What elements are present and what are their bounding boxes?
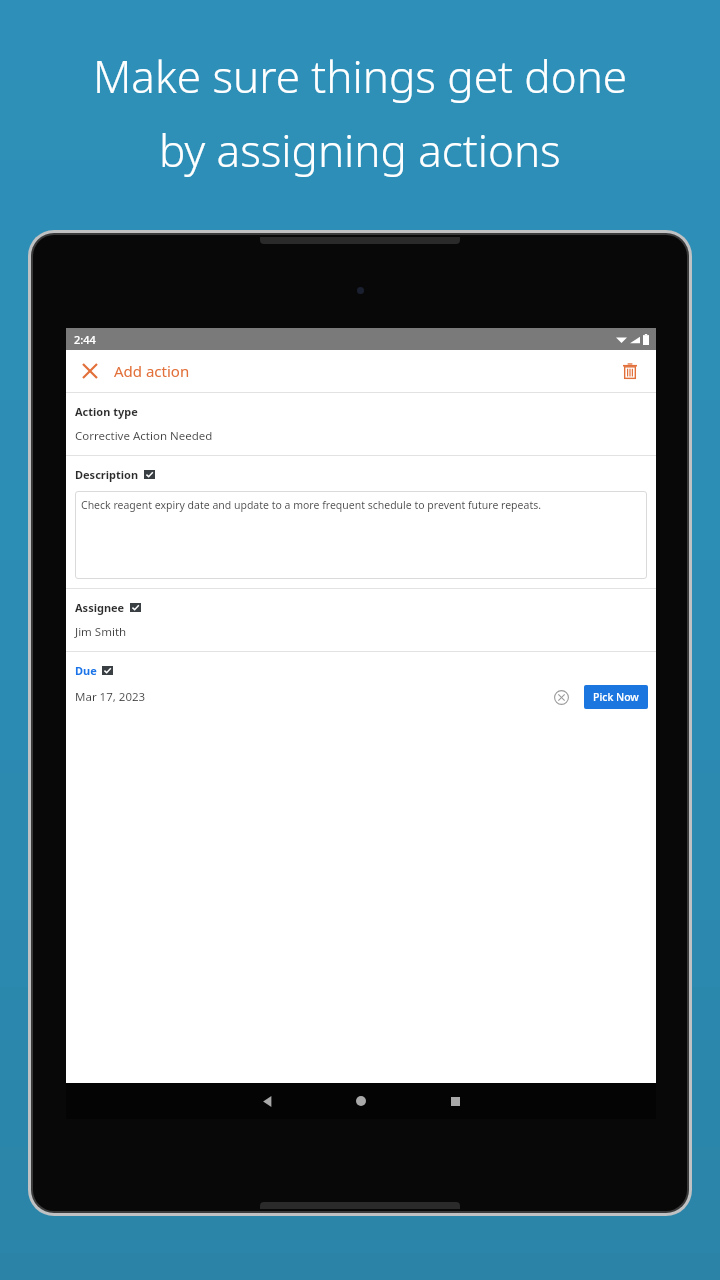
button[interactable]: Clear date	[550, 686, 572, 708]
staticText: Check reagent expiry date and update to …	[81, 498, 542, 512]
staticText: Corrective Action Needed	[75, 428, 213, 444]
staticText: by assigning actions	[159, 120, 561, 180]
staticText: Jim Smith	[75, 624, 127, 640]
button[interactable]: Pick Now	[584, 685, 648, 709]
staticText: Description	[75, 467, 139, 482]
staticText: Action type	[75, 404, 138, 419]
button[interactable]: Delete	[614, 355, 646, 387]
staticText: Assignee	[75, 600, 125, 615]
button[interactable]: Recents	[433, 1083, 477, 1119]
staticText: Due	[75, 663, 97, 678]
staticText: Mar 17, 2023	[75, 689, 146, 705]
button[interactable]: Close	[74, 355, 106, 387]
button[interactable]: Check reagent expiry date and update to …	[75, 491, 647, 579]
button[interactable]: Back	[245, 1083, 289, 1119]
staticText: Pick Now	[593, 690, 639, 704]
staticText: 2:44	[74, 332, 96, 347]
staticText: Add action	[114, 361, 190, 381]
staticText: Make sure things get done	[93, 46, 628, 106]
button[interactable]: Home	[339, 1083, 383, 1119]
